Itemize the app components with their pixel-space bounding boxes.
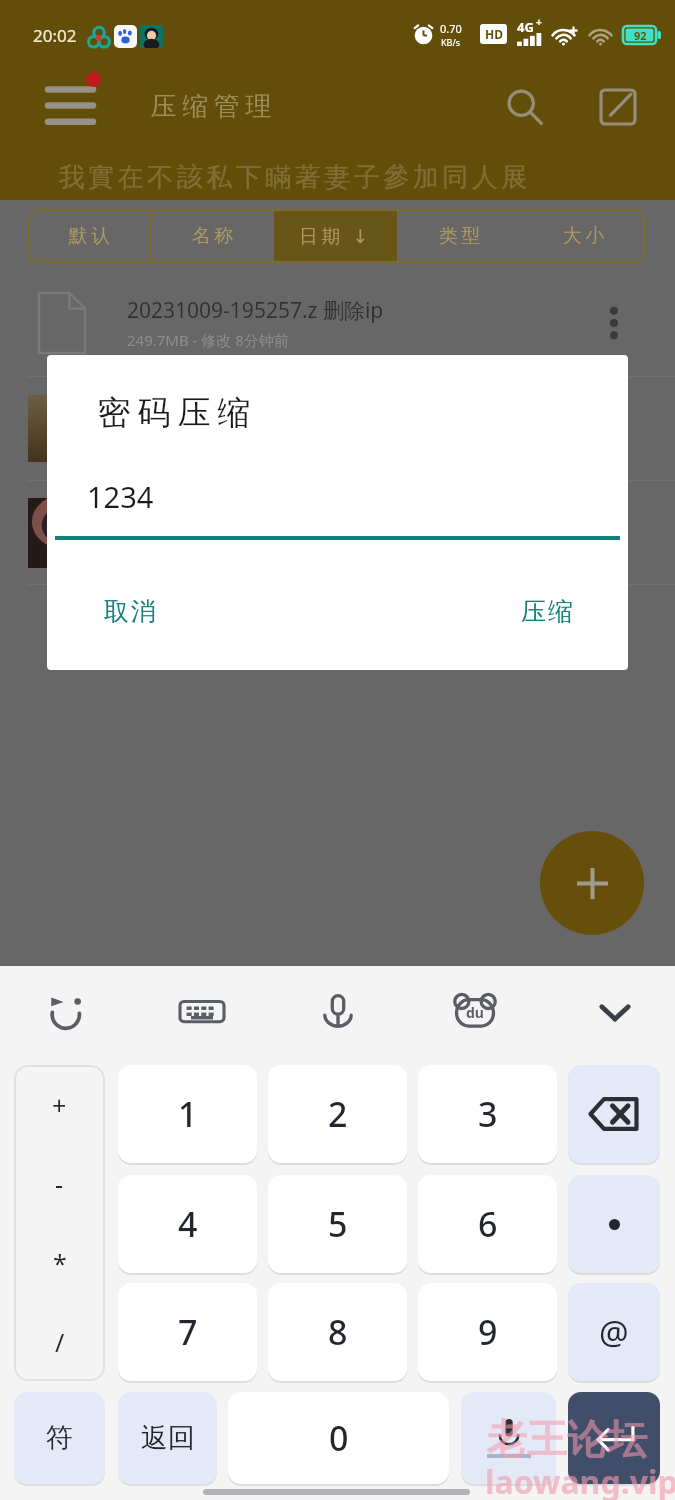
button[interactable]: * <box>14 1223 105 1302</box>
staticText: 压缩管理 <box>148 90 274 123</box>
button[interactable]: 取消 <box>103 596 157 627</box>
staticText: HD <box>485 26 503 42</box>
button[interactable]: 符 <box>14 1392 105 1484</box>
button[interactable]: 名称 <box>151 209 273 263</box>
button[interactable]: 压缩 <box>520 596 574 627</box>
button[interactable]: Baidu input <box>449 986 501 1038</box>
staticText: 大小 <box>561 224 606 248</box>
staticText: 8 <box>328 1309 348 1355</box>
button[interactable]: Emoji <box>42 986 94 1038</box>
button[interactable]: 3 <box>418 1065 557 1163</box>
staticText: 9 <box>478 1309 498 1355</box>
staticText: 默认 <box>67 224 112 248</box>
staticText: 4G <box>517 18 534 36</box>
staticText: 符 <box>46 1421 73 1455</box>
button[interactable] <box>568 1065 660 1163</box>
button[interactable]: Search <box>495 77 555 137</box>
button[interactable]: 6 <box>418 1175 557 1273</box>
button[interactable]: 20231009-195257.z 删除ip <box>0 270 675 376</box>
staticText: KB/s <box>441 36 461 48</box>
button[interactable] <box>568 1392 660 1484</box>
staticText: laowang.vip <box>485 1460 675 1500</box>
button[interactable]: 1 <box>118 1065 257 1163</box>
staticText: 类型 <box>437 224 482 248</box>
staticText: 20231009-195257.z 删除ip <box>127 296 384 325</box>
staticText: 5 <box>328 1201 348 1247</box>
staticText: - <box>55 1167 64 1201</box>
button[interactable]: 返回 <box>118 1392 217 1484</box>
staticText: 老王论坛 <box>487 1414 647 1464</box>
button[interactable]: - <box>14 1144 105 1223</box>
staticText: 6 <box>478 1201 498 1247</box>
staticText: 20:02 <box>33 24 77 47</box>
button[interactable]: 8 <box>268 1283 407 1381</box>
staticText: 2 <box>328 1091 348 1137</box>
button[interactable]: Hide keyboard <box>589 986 641 1038</box>
button[interactable] <box>0 377 675 480</box>
staticText: 返回 <box>141 1421 195 1455</box>
staticText: + <box>536 15 542 29</box>
staticText: 92 <box>634 28 647 43</box>
staticText: 1234 <box>87 477 154 516</box>
button[interactable]: 日期 ↓ <box>274 209 397 263</box>
staticText: / <box>55 1325 65 1359</box>
button[interactable]: 5 <box>268 1175 407 1273</box>
button[interactable]: Keyboard <box>176 986 228 1038</box>
button[interactable]: + <box>14 1065 105 1144</box>
button[interactable]: @ <box>568 1283 660 1381</box>
button[interactable]: 0 <box>228 1392 449 1484</box>
button[interactable]: 默认 <box>28 209 150 263</box>
staticText: 我實在不該私下瞞著妻子參加同人展 <box>57 161 529 194</box>
staticText: du <box>466 1003 484 1022</box>
staticText: * <box>53 1246 67 1280</box>
staticText: @ <box>599 1310 629 1355</box>
staticText: 压缩 <box>520 596 574 627</box>
button[interactable]: / <box>14 1302 105 1381</box>
staticText: 密码压缩 <box>94 392 254 434</box>
staticText: + <box>52 1088 67 1122</box>
staticText: 3 <box>478 1091 498 1137</box>
staticText: 取消 <box>103 596 157 627</box>
button[interactable]: 4 <box>118 1175 257 1273</box>
button[interactable]: 2 <box>268 1065 407 1163</box>
button[interactable]: More options <box>590 299 638 347</box>
staticText: 249.7MB - 修改 8分钟前 <box>127 330 289 350</box>
button[interactable]: 9 <box>418 1283 557 1381</box>
staticText: 7 <box>178 1309 198 1355</box>
button[interactable]: Edit <box>588 77 648 137</box>
staticText: 1 <box>178 1091 198 1137</box>
button[interactable]: Menu <box>38 74 110 136</box>
button[interactable] <box>461 1392 556 1484</box>
staticText: 0 <box>329 1415 349 1461</box>
button[interactable]: Voice input <box>312 986 364 1038</box>
button[interactable]: 大小 <box>522 209 645 263</box>
button[interactable] <box>0 481 675 584</box>
button[interactable] <box>568 1175 660 1273</box>
staticText: 4 <box>178 1201 198 1247</box>
staticText: 日期 ↓ <box>299 223 372 249</box>
staticText: 名称 <box>190 224 235 248</box>
button[interactable]: 7 <box>118 1283 257 1381</box>
button[interactable]: Add <box>540 831 644 935</box>
button[interactable]: 类型 <box>398 209 521 263</box>
staticText: 0.70 <box>440 21 462 36</box>
